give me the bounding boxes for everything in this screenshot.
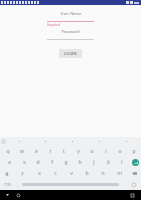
- staticText: c: [54, 170, 57, 177]
- staticText: u: [90, 148, 94, 155]
- button[interactable]: Enter: [129, 157, 141, 168]
- button[interactable]: Clipboard: [0, 137, 6, 146]
- staticText: i: [105, 148, 107, 155]
- staticText: y: [77, 148, 80, 155]
- button[interactable]: a: [2, 157, 17, 168]
- staticText: User Name: [60, 11, 82, 16]
- button[interactable]: x: [31, 168, 47, 179]
- button[interactable]: [113, 137, 140, 146]
- button[interactable]: m: [111, 168, 127, 179]
- button[interactable]: LOGIN: [59, 49, 82, 58]
- button[interactable]: [86, 137, 113, 146]
- button[interactable]: ?123: [0, 179, 14, 190]
- staticText: w: [20, 148, 24, 155]
- staticText: k: [107, 159, 110, 166]
- staticText: g: [64, 159, 68, 166]
- button[interactable]: [6, 137, 32, 146]
- staticText: e: [35, 148, 38, 155]
- button[interactable]: y: [71, 146, 85, 157]
- staticText: o: [118, 148, 122, 155]
- button[interactable]: Emoji: [127, 179, 141, 190]
- button[interactable]: [32, 137, 59, 146]
- button[interactable]: c: [47, 168, 63, 179]
- button[interactable]: u: [85, 146, 99, 157]
- button[interactable]: f: [45, 157, 59, 168]
- staticText: ?123: [4, 183, 11, 187]
- button[interactable]: d: [31, 157, 45, 168]
- button[interactable]: g: [59, 157, 73, 168]
- button[interactable]: r: [43, 146, 57, 157]
- staticText: d: [36, 159, 40, 166]
- staticText: m: [117, 170, 122, 177]
- button[interactable]: e: [29, 146, 43, 157]
- button[interactable]: q: [0, 146, 15, 157]
- staticText: a: [8, 159, 11, 166]
- button[interactable]: Space: [22, 179, 119, 190]
- button[interactable]: i: [99, 146, 113, 157]
- staticText: .: [122, 182, 124, 187]
- staticText: LOGIN: [64, 51, 77, 56]
- button[interactable]: h: [73, 157, 87, 168]
- button[interactable]: p: [127, 146, 141, 157]
- button[interactable]: t: [57, 146, 71, 157]
- button[interactable]: v: [63, 168, 79, 179]
- button[interactable]: Recents: [128, 191, 136, 199]
- staticText: h: [78, 159, 82, 166]
- staticText: s: [23, 159, 26, 166]
- button[interactable]: j: [87, 157, 101, 168]
- staticText: v: [70, 170, 73, 177]
- staticText: Password: [61, 29, 80, 34]
- staticText: n: [101, 170, 105, 177]
- staticText: p: [132, 148, 136, 155]
- staticText: z: [21, 170, 24, 177]
- button[interactable]: z: [14, 168, 31, 179]
- button[interactable]: Shift: [0, 168, 14, 179]
- staticText: t: [63, 148, 65, 155]
- button[interactable]: k: [101, 157, 115, 168]
- button[interactable]: l: [115, 157, 129, 168]
- button[interactable]: Backspace: [127, 168, 141, 179]
- button[interactable]: n: [95, 168, 111, 179]
- button[interactable]: ,: [14, 179, 22, 190]
- button[interactable]: o: [113, 146, 127, 157]
- staticText: l: [121, 159, 123, 166]
- staticText: r: [49, 148, 52, 155]
- staticText: f: [51, 159, 53, 166]
- staticText: b: [85, 170, 89, 177]
- staticText: j: [93, 159, 95, 166]
- button[interactable]: Home: [14, 191, 22, 199]
- staticText: x: [38, 170, 41, 177]
- button[interactable]: b: [79, 168, 95, 179]
- staticText: q: [6, 148, 10, 155]
- staticText: ,: [17, 182, 19, 187]
- button[interactable]: Back: [3, 191, 11, 199]
- button[interactable]: [59, 137, 86, 146]
- staticText: Required: [47, 23, 60, 27]
- button[interactable]: w: [15, 146, 29, 157]
- button[interactable]: s: [17, 157, 31, 168]
